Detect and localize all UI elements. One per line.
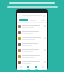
button[interactable] <box>17 41 47 47</box>
button[interactable] <box>17 47 47 53</box>
button[interactable] <box>17 35 47 41</box>
button[interactable]: Settings <box>40 65 46 70</box>
button[interactable]: Calls <box>33 65 39 70</box>
button[interactable] <box>17 53 47 59</box>
button[interactable] <box>19 19 28 21</box>
button[interactable]: Home <box>18 65 24 70</box>
button[interactable] <box>17 23 47 29</box>
button[interactable]: Chats <box>25 65 31 70</box>
button[interactable] <box>17 59 47 65</box>
button[interactable] <box>17 29 47 35</box>
